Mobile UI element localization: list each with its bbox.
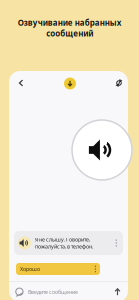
button[interactable]: Back (14, 76, 28, 90)
staticText: Хорошо (20, 265, 40, 273)
staticText: Я не слышу. Говорите, пожалуйста, в теле… (35, 236, 93, 250)
staticText: Озвучивание набранных сообщений (17, 17, 121, 39)
button[interactable]: Хорошо (16, 263, 100, 275)
button[interactable]: Refresh (112, 76, 126, 90)
button[interactable]: Send (111, 285, 124, 298)
button[interactable]: Play message (64, 77, 76, 89)
staticText: Введите сообщение (28, 288, 78, 296)
